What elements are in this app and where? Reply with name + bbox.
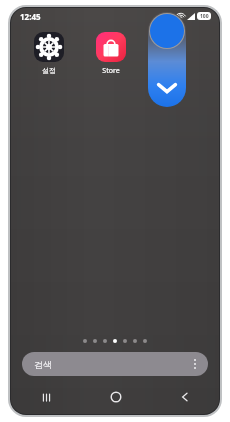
button[interactable]: Recents bbox=[11, 384, 81, 410]
button[interactable]: 설정 bbox=[27, 30, 71, 77]
button[interactable]: Store bbox=[89, 30, 133, 78]
staticText: 12:45 bbox=[20, 11, 41, 22]
staticText: 검색 bbox=[34, 359, 52, 370]
staticText: 설정 bbox=[42, 66, 56, 75]
staticText: Store bbox=[102, 66, 120, 76]
button[interactable]: Back bbox=[150, 384, 219, 410]
button[interactable]: 검색 bbox=[22, 352, 208, 376]
staticText: 100 bbox=[200, 13, 209, 20]
button[interactable]: Expand widget bbox=[148, 12, 186, 107]
button[interactable]: More options bbox=[192, 357, 198, 371]
button[interactable]: Home bbox=[81, 384, 150, 410]
